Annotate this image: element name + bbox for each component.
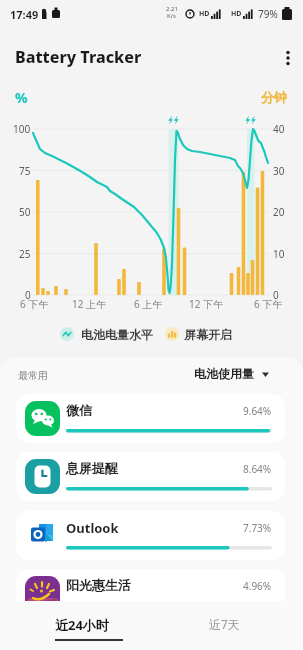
staticText: 4.96% bbox=[243, 579, 272, 593]
staticText: 6 下午 bbox=[20, 297, 49, 311]
staticText: 息屏提醒 bbox=[66, 460, 118, 476]
staticText: 40 bbox=[273, 122, 285, 136]
staticText: 100 bbox=[13, 122, 31, 136]
staticText: Battery Tracker bbox=[15, 46, 142, 68]
staticText: 近24小时 bbox=[55, 616, 109, 634]
button[interactable]: 近7天 bbox=[202, 609, 233, 625]
staticText: 6 上午 bbox=[134, 297, 163, 311]
staticText: 20 bbox=[273, 205, 285, 219]
staticText: 10 bbox=[273, 247, 285, 261]
staticText: 12 上午 bbox=[72, 297, 107, 311]
staticText: 17:49 bbox=[10, 7, 39, 22]
staticText: 电池电量水平 bbox=[81, 327, 153, 342]
staticText: 12 下午 bbox=[189, 297, 224, 311]
button[interactable]: 息屏提醒 bbox=[16, 452, 285, 501]
staticText: 50 bbox=[19, 205, 31, 219]
staticText: 0 bbox=[273, 288, 279, 302]
staticText: 75 bbox=[19, 164, 31, 178]
staticText: 近7天 bbox=[209, 616, 240, 632]
button[interactable]: 电池使用量 bbox=[194, 366, 272, 381]
staticText: 79% bbox=[258, 7, 278, 21]
button[interactable] bbox=[280, 50, 296, 66]
staticText: 2.21 bbox=[166, 5, 178, 13]
staticText: 阳光惠生活 bbox=[66, 577, 131, 593]
staticText: Outlook bbox=[66, 519, 119, 537]
staticText: 屏幕开启 bbox=[184, 327, 232, 342]
staticText: HD bbox=[231, 9, 242, 19]
staticText: 0 bbox=[25, 288, 31, 302]
staticText: 分钟 bbox=[261, 89, 287, 105]
staticText: 6 下午 bbox=[254, 297, 283, 311]
staticText: 最常用 bbox=[18, 369, 48, 382]
staticText: 8.64% bbox=[243, 462, 272, 476]
button[interactable]: 阳光惠生活 bbox=[16, 569, 285, 618]
staticText: 微信 bbox=[66, 402, 92, 418]
staticText: HD bbox=[199, 9, 210, 19]
staticText: 30 bbox=[273, 164, 285, 178]
button[interactable]: 微信 bbox=[16, 394, 285, 443]
staticText: 电池使用量 bbox=[194, 366, 254, 381]
button[interactable]: Outlook bbox=[16, 511, 285, 560]
staticText: 7.73% bbox=[243, 521, 272, 535]
staticText: % bbox=[15, 88, 28, 107]
staticText: 25 bbox=[19, 247, 31, 261]
button[interactable]: 近24小时 bbox=[48, 609, 116, 627]
staticText: 9.64% bbox=[243, 404, 272, 418]
staticText: K/s bbox=[167, 12, 176, 20]
